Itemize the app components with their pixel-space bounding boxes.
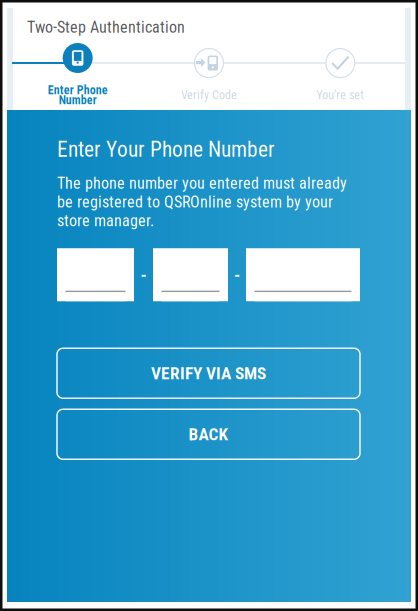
staticText: VERIFY VIA SMS [151, 363, 266, 383]
staticText: The phone number you entered must alread… [57, 174, 347, 230]
button[interactable]: Verify Code [181, 48, 237, 102]
button[interactable]: Phone number field [246, 248, 360, 301]
staticText: Enter Phone [48, 83, 108, 97]
staticText: - [234, 265, 240, 285]
button[interactable]: Enter Phone [48, 43, 108, 107]
staticText: Enter Your Phone Number [57, 137, 275, 162]
staticText: - [140, 265, 146, 285]
staticText: Number [59, 93, 97, 107]
staticText: You're set [316, 88, 364, 102]
button[interactable]: Phone number field [153, 248, 228, 301]
button[interactable]: VERIFY VIA SMS [57, 348, 360, 398]
button[interactable]: You're set [316, 48, 364, 102]
staticText: BACK [188, 424, 228, 444]
staticText: Verify Code [181, 88, 237, 102]
staticText: Two-Step Authentication [27, 18, 185, 37]
button[interactable]: BACK [57, 409, 360, 459]
button[interactable]: Phone number field [57, 248, 134, 301]
